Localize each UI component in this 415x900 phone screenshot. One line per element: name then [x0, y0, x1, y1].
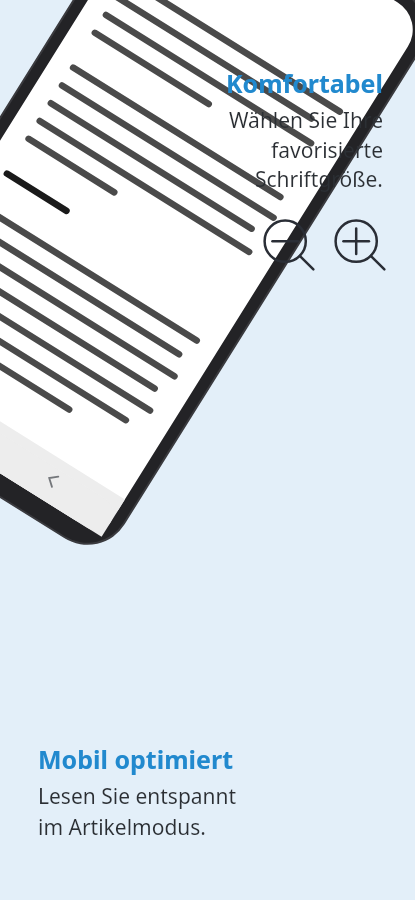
staticText: Mobil optimiert [38, 742, 233, 776]
staticText: Komfortabel [133, 66, 383, 100]
staticText: Lesen Sie entspannt im Artikelmodus. [38, 782, 237, 841]
button[interactable]: Schrift verkleinern [260, 216, 322, 278]
staticText: Wählen Sie Ihre favorisierte Schriftgröß… [133, 106, 383, 193]
button[interactable]: Schrift vergrößern [331, 216, 393, 278]
